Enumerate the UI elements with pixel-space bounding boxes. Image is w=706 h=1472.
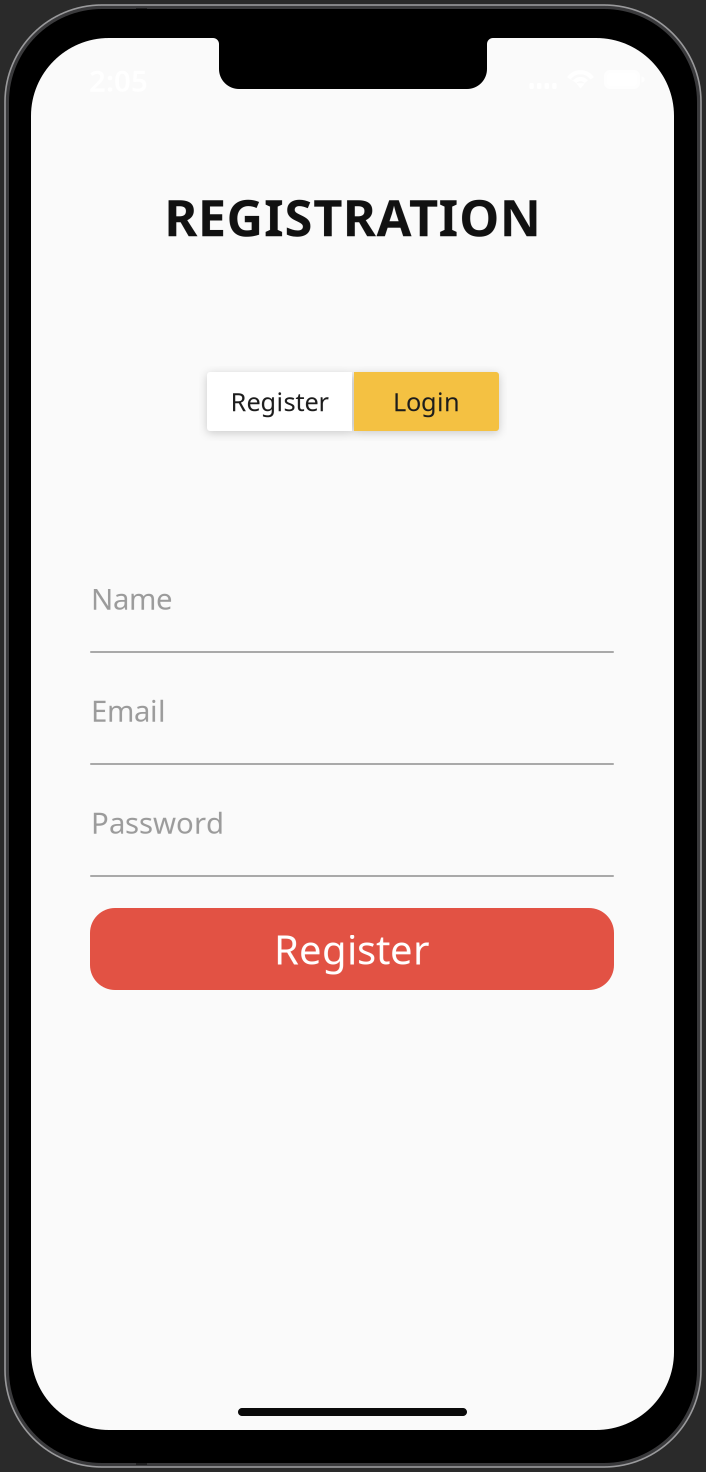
button[interactable]: Register bbox=[207, 372, 352, 431]
button[interactable]: Login bbox=[354, 372, 499, 431]
button[interactable]: Register bbox=[90, 908, 614, 990]
staticText: Register bbox=[274, 922, 430, 975]
button[interactable]: Name bbox=[90, 575, 614, 653]
button[interactable]: Password bbox=[90, 799, 614, 877]
staticText: Password bbox=[91, 803, 224, 842]
staticText: Register bbox=[230, 385, 328, 418]
staticText: Name bbox=[91, 579, 173, 618]
staticText: Login bbox=[393, 385, 460, 418]
button[interactable]: Email bbox=[90, 687, 614, 765]
staticText: REGISTRATION bbox=[164, 183, 541, 250]
staticText: Email bbox=[91, 691, 166, 730]
